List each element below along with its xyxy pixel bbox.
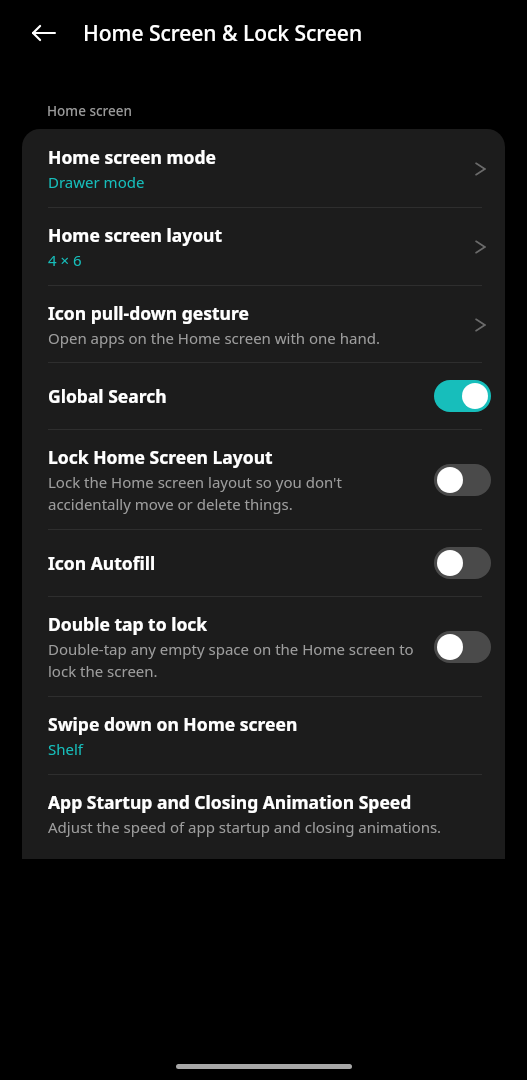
staticText: Icon pull-down gesture [48,301,249,325]
button[interactable]: Double tap to lock [22,597,505,696]
staticText: Drawer mode [48,172,145,192]
button[interactable]: Swipe down on Home screen [22,697,505,774]
staticText: Double-tap any empty space on the Home s… [48,639,416,682]
staticText: Swipe down on Home screen [48,712,298,736]
button[interactable]: Icon pull-down gesture [22,286,505,362]
button[interactable]: Home screen mode [22,129,505,207]
button[interactable]: Home screen layout [22,208,505,285]
staticText: 4 × 6 [48,250,82,270]
staticText: Adjust the speed of app startup and clos… [48,817,442,837]
button[interactable]: Global Search [22,363,505,429]
staticText: Lock the Home screen layout so you don't… [48,472,416,515]
staticText: Home screen [47,102,132,120]
staticText: App Startup and Closing Animation Speed [48,790,412,814]
staticText: Double tap to lock [48,612,208,636]
button[interactable]: Toggle off [434,464,491,496]
staticText: Icon Autofill [48,551,156,575]
staticText: Lock Home Screen Layout [48,445,273,469]
button[interactable]: App Startup and Closing Animation Speed [22,775,505,859]
button[interactable]: Toggle on [434,380,491,412]
staticText: Home screen layout [48,223,223,247]
button[interactable]: Toggle off [434,631,491,663]
staticText: Home Screen & Lock Screen [83,19,363,48]
button[interactable]: Toggle off [434,547,491,579]
button[interactable]: Back [22,11,66,55]
staticText: Shelf [48,739,83,759]
staticText: Home screen mode [48,145,216,169]
button[interactable]: Icon Autofill [22,530,505,596]
staticText: Global Search [48,384,167,408]
staticText: Open apps on the Home screen with one ha… [48,328,380,348]
button[interactable]: Lock Home Screen Layout [22,430,505,529]
